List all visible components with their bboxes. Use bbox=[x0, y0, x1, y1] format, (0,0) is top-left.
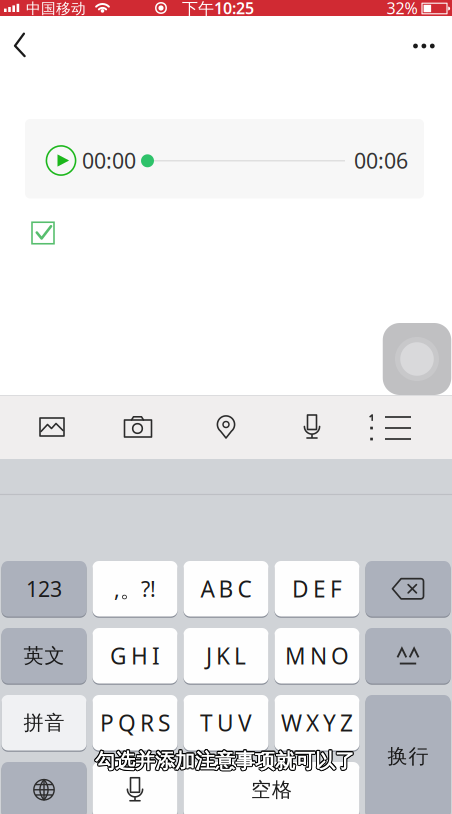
staticText: 勾选并添加注意事项就可以了 bbox=[94, 749, 354, 773]
staticText: 勾选并添加注意事项就可以了 bbox=[95, 748, 355, 772]
button[interactable]: More bbox=[411, 38, 437, 54]
staticText: D E F bbox=[292, 574, 342, 604]
button[interactable]: Re-enter bbox=[365, 628, 450, 683]
staticText: 拼 音 bbox=[23, 710, 64, 735]
button[interactable]: P Q R S bbox=[92, 695, 177, 750]
staticText: 勾选并添加注意事项就可以了 bbox=[95, 749, 355, 773]
staticText: 勾选并添加注意事项就可以了 bbox=[94, 749, 354, 774]
button[interactable]: W X Y Z bbox=[274, 695, 359, 750]
staticText: 换 行 bbox=[387, 744, 428, 769]
staticText: M N O bbox=[285, 641, 349, 671]
button[interactable]: 空 格 bbox=[183, 762, 359, 814]
button[interactable]: Camera bbox=[110, 401, 166, 453]
staticText: 勾选并添加注意事项就可以了 bbox=[95, 750, 355, 774]
button[interactable]: G H I bbox=[92, 628, 177, 683]
button[interactable]: Photos bbox=[24, 401, 80, 453]
button[interactable]: Delete bbox=[365, 561, 450, 616]
button[interactable]: Next keyboard bbox=[1, 762, 86, 814]
staticText: 勾选并添加注意事项就可以了 bbox=[94, 748, 354, 772]
staticText: G H I bbox=[110, 641, 160, 671]
staticText: T U V bbox=[200, 708, 252, 738]
button[interactable]: M N O bbox=[274, 628, 359, 683]
staticText: 00:00 bbox=[82, 146, 136, 175]
staticText: J K L bbox=[206, 641, 246, 671]
staticText: 勾选并添加注意事项就可以了 bbox=[96, 749, 356, 773]
button[interactable]: J K L bbox=[183, 628, 268, 683]
button[interactable]: 123 bbox=[1, 561, 86, 616]
staticText: 中国移动 bbox=[26, 0, 86, 17]
button[interactable]: 英 文 bbox=[1, 628, 86, 683]
staticText: 勾选并添加注意事项就可以了 bbox=[96, 748, 356, 772]
staticText: 123 bbox=[26, 575, 62, 603]
staticText: P Q R S bbox=[100, 708, 170, 738]
staticText: A B C bbox=[200, 574, 251, 604]
button[interactable]: AssistiveTouch bbox=[383, 323, 451, 395]
button[interactable]: ,。?! bbox=[92, 561, 177, 616]
button[interactable]: T U V bbox=[183, 695, 268, 750]
staticText: 英 文 bbox=[23, 643, 64, 668]
button[interactable]: Voice input bbox=[284, 401, 340, 453]
staticText: 勾选并添加注意事项就可以了 bbox=[96, 749, 356, 774]
button[interactable]: Checklist bbox=[362, 402, 418, 454]
button[interactable]: A B C bbox=[183, 561, 268, 616]
staticText: 空 格 bbox=[251, 777, 292, 802]
button[interactable]: D E F bbox=[274, 561, 359, 616]
button[interactable]: Dictation bbox=[92, 762, 177, 814]
staticText: 32% bbox=[386, 0, 417, 19]
button[interactable]: 换 行 bbox=[365, 695, 450, 814]
button[interactable]: 拼 音 bbox=[1, 695, 86, 750]
staticText: W X Y Z bbox=[281, 708, 353, 738]
staticText: 下午10:25 bbox=[182, 0, 254, 19]
staticText: ,。?! bbox=[114, 574, 156, 603]
staticText: 00:06 bbox=[354, 146, 408, 175]
button[interactable]: Location bbox=[198, 401, 254, 453]
button[interactable]: Checked checkbox bbox=[31, 221, 55, 245]
button[interactable]: Play bbox=[45, 145, 76, 176]
button[interactable]: Back bbox=[7, 32, 37, 58]
